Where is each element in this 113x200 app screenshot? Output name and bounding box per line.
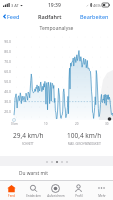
staticText: MAX. GESCHWINDIGKEIT xyxy=(68,142,101,146)
staticText: 30.0 xyxy=(0,99,11,104)
staticText: 19:39 xyxy=(48,2,61,9)
button[interactable]: Entdecken xyxy=(22,181,44,200)
staticText: 0 km xyxy=(11,122,18,126)
staticText: 80.0 xyxy=(0,49,11,54)
staticText: 90.0 xyxy=(0,39,11,44)
staticText: 30 xyxy=(105,122,109,126)
staticText: Profil xyxy=(75,194,83,198)
staticText: Entdecken xyxy=(26,194,41,198)
staticText: 29,4 km/h xyxy=(13,131,44,140)
button[interactable]: Feed xyxy=(0,181,22,200)
staticText: 10 xyxy=(44,122,48,126)
button[interactable]: Feed xyxy=(2,11,21,22)
button[interactable]: Profil xyxy=(67,181,90,200)
staticText: 20 xyxy=(75,122,79,126)
staticText: Du warst mit xyxy=(19,170,48,177)
staticText: 20.0 xyxy=(0,109,11,114)
button[interactable]: Bearbeiten xyxy=(79,11,110,22)
button[interactable]: Aufzeichnen xyxy=(44,181,67,200)
staticText: 60.0 xyxy=(0,69,11,74)
staticText: Bearbeiten xyxy=(80,13,109,20)
button[interactable]: Du warst mit xyxy=(0,166,113,180)
staticText: SCHNITT xyxy=(22,142,34,146)
staticText: Tempoanalyse xyxy=(0,25,113,32)
staticText: Feed xyxy=(8,194,15,198)
button[interactable]: Mehr xyxy=(90,181,113,200)
staticText: Radfahrt xyxy=(38,13,62,20)
staticText: 100,4 km/h xyxy=(67,131,102,140)
staticText: Feed xyxy=(7,13,20,20)
staticText: 70.0 xyxy=(0,59,11,64)
staticText: 50.0 xyxy=(0,79,11,84)
staticText: Mehr xyxy=(98,194,106,198)
staticText: 40.0 xyxy=(0,89,11,94)
staticText: 46% xyxy=(93,3,101,8)
staticText: 3 AT xyxy=(11,3,19,8)
staticText: Aufzeichnen xyxy=(47,194,65,198)
